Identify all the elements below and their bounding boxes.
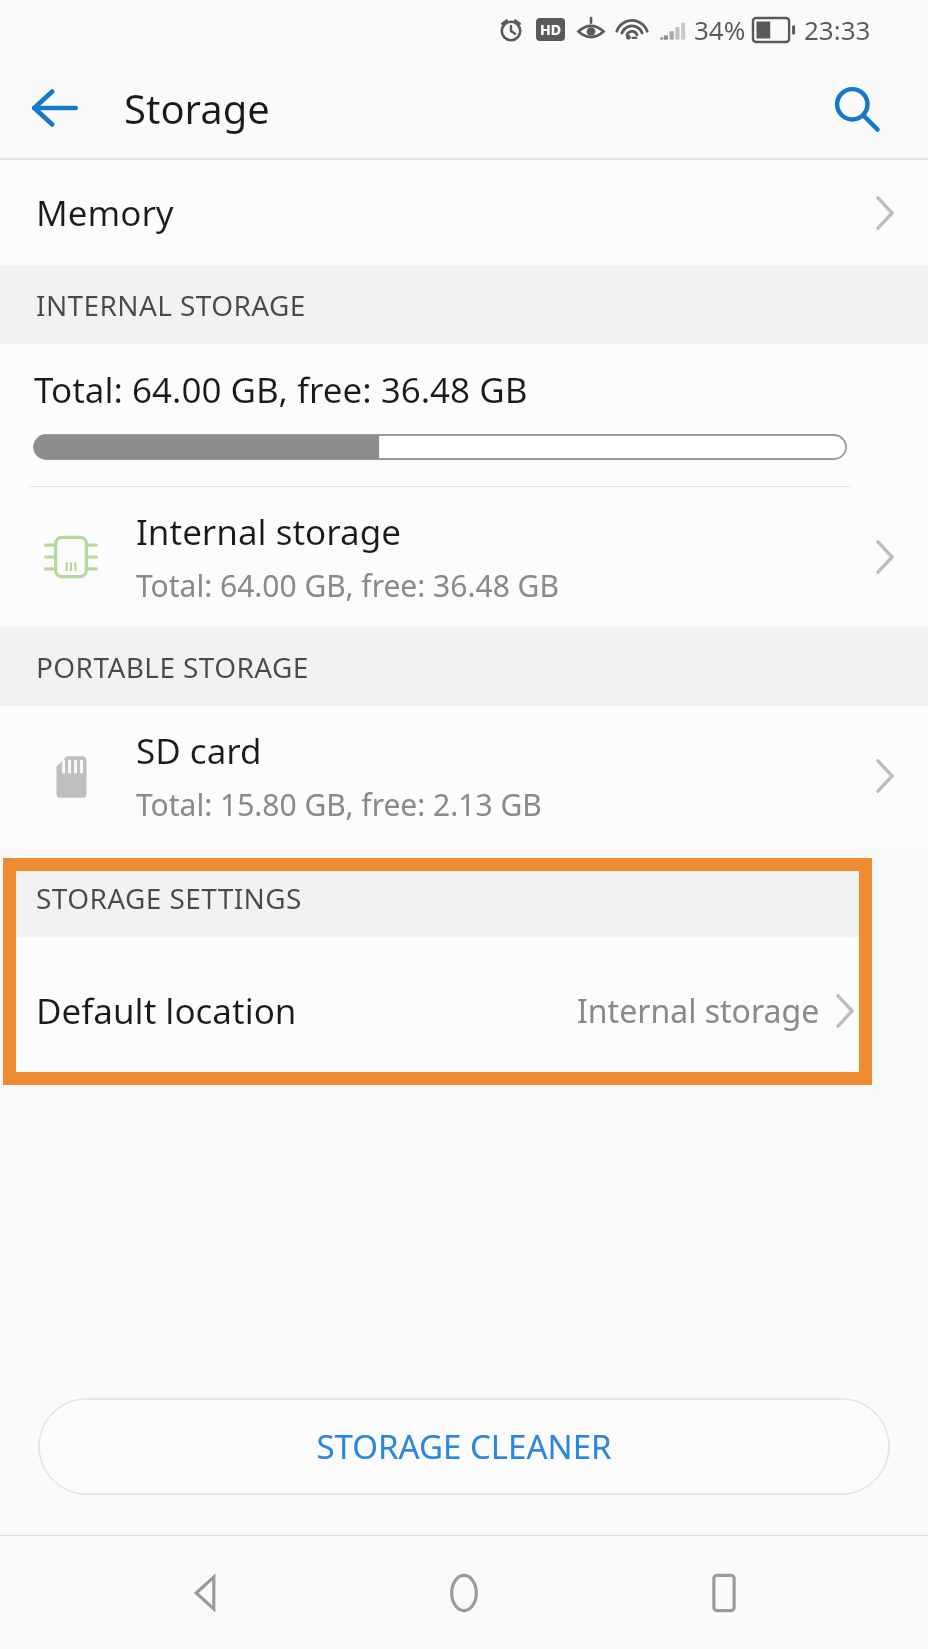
button[interactable]: Back <box>18 71 92 145</box>
staticText: INTERNAL STORAGE <box>36 286 306 324</box>
staticText: PORTABLE STORAGE <box>36 648 309 686</box>
button[interactable]: Memory <box>0 160 928 265</box>
button[interactable]: STORAGE CLEANER <box>38 1398 890 1495</box>
staticText: SD card <box>136 727 262 775</box>
staticText: 34% <box>694 12 746 47</box>
button[interactable]: Back <box>150 1538 260 1648</box>
staticText: HD <box>540 20 561 39</box>
staticText: Internal storage <box>577 989 820 1033</box>
staticText: Internal storage <box>136 508 401 556</box>
button[interactable]: Search <box>820 72 892 144</box>
staticText: Total: 64.00 GB, free: 36.48 GB <box>34 366 528 414</box>
button[interactable]: Home <box>409 1538 519 1648</box>
staticText: Default location <box>36 987 297 1035</box>
button[interactable]: Internal storage <box>0 487 928 627</box>
staticText: STORAGE SETTINGS <box>36 879 302 917</box>
button[interactable]: Default location <box>3 937 872 1085</box>
staticText: Storage <box>124 81 270 135</box>
button[interactable]: SD card <box>0 706 928 846</box>
staticText: 23:33 <box>804 12 871 47</box>
staticText: Total: 15.80 GB, free: 2.13 GB <box>136 784 542 825</box>
button[interactable]: Recent apps <box>669 1538 779 1648</box>
staticText: STORAGE CLEANER <box>316 1424 612 1469</box>
staticText: Total: 64.00 GB, free: 36.48 GB <box>136 565 559 606</box>
staticText: Memory <box>36 189 174 237</box>
